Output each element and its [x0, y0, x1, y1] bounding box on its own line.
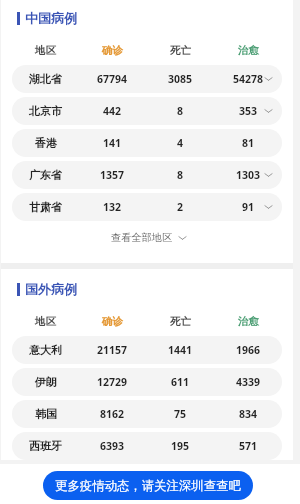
staticText: 91 — [242, 200, 255, 214]
button[interactable]: 意大利 — [12, 336, 282, 364]
staticText: 12729 — [97, 375, 128, 389]
staticText: 广东省 — [29, 168, 62, 182]
staticText: 4 — [177, 136, 184, 150]
staticText: 更多疫情动态，请关注深圳查查吧 — [55, 478, 241, 494]
staticText: 地区 — [35, 44, 56, 57]
staticText: 1357 — [100, 168, 125, 182]
staticText: 香港 — [35, 136, 57, 150]
button[interactable]: 伊朗 — [12, 368, 282, 396]
staticText: 141 — [103, 136, 122, 150]
button[interactable]: 广东省 — [12, 161, 282, 189]
staticText: 4339 — [236, 375, 261, 389]
staticText: 75 — [174, 407, 187, 421]
staticText: 死亡 — [170, 315, 191, 328]
staticText: 湖北省 — [29, 72, 62, 86]
staticText: 8 — [177, 104, 184, 118]
button[interactable]: 查看全部地区 — [101, 227, 193, 248]
staticText: 确诊 — [102, 315, 123, 328]
staticText: 3085 — [168, 72, 193, 86]
button[interactable]: 韩国 — [12, 400, 282, 428]
staticText: 132 — [103, 200, 122, 214]
button[interactable]: 湖北省 — [12, 65, 282, 93]
staticText: 8 — [177, 168, 184, 182]
staticText: 353 — [239, 104, 258, 118]
staticText: 地区 — [35, 315, 56, 328]
button[interactable]: 香港 — [12, 129, 282, 157]
staticText: 中国病例 — [25, 10, 77, 26]
staticText: 治愈 — [238, 44, 259, 57]
staticText: 6393 — [100, 439, 125, 453]
button[interactable]: 甘肃省 — [12, 193, 282, 221]
staticText: 韩国 — [35, 407, 57, 421]
staticText: 195 — [171, 439, 190, 453]
staticText: 81 — [242, 136, 255, 150]
staticText: 北京市 — [29, 104, 62, 118]
staticText: 1966 — [236, 343, 261, 357]
staticText: 54278 — [233, 72, 264, 86]
staticText: 意大利 — [29, 343, 62, 357]
staticText: 确诊 — [102, 44, 123, 57]
staticText: 西班牙 — [29, 439, 62, 453]
staticText: 2 — [177, 200, 184, 214]
staticText: 67794 — [97, 72, 128, 86]
staticText: 死亡 — [170, 44, 191, 57]
button[interactable]: 西班牙 — [12, 432, 282, 460]
staticText: 治愈 — [238, 315, 259, 328]
staticText: 查看全部地区 — [111, 231, 173, 244]
staticText: 21157 — [97, 343, 128, 357]
button[interactable]: 北京市 — [12, 97, 282, 125]
staticText: 国外病例 — [25, 281, 77, 297]
staticText: 834 — [239, 407, 258, 421]
staticText: 611 — [171, 375, 190, 389]
staticText: 甘肃省 — [29, 200, 62, 214]
staticText: 伊朗 — [35, 375, 57, 389]
staticText: 8162 — [100, 407, 125, 421]
button[interactable]: 更多疫情动态，请关注深圳查查吧 — [43, 471, 253, 500]
staticText: 1303 — [236, 168, 261, 182]
staticText: 442 — [103, 104, 122, 118]
staticText: 571 — [239, 439, 258, 453]
staticText: 1441 — [168, 343, 193, 357]
